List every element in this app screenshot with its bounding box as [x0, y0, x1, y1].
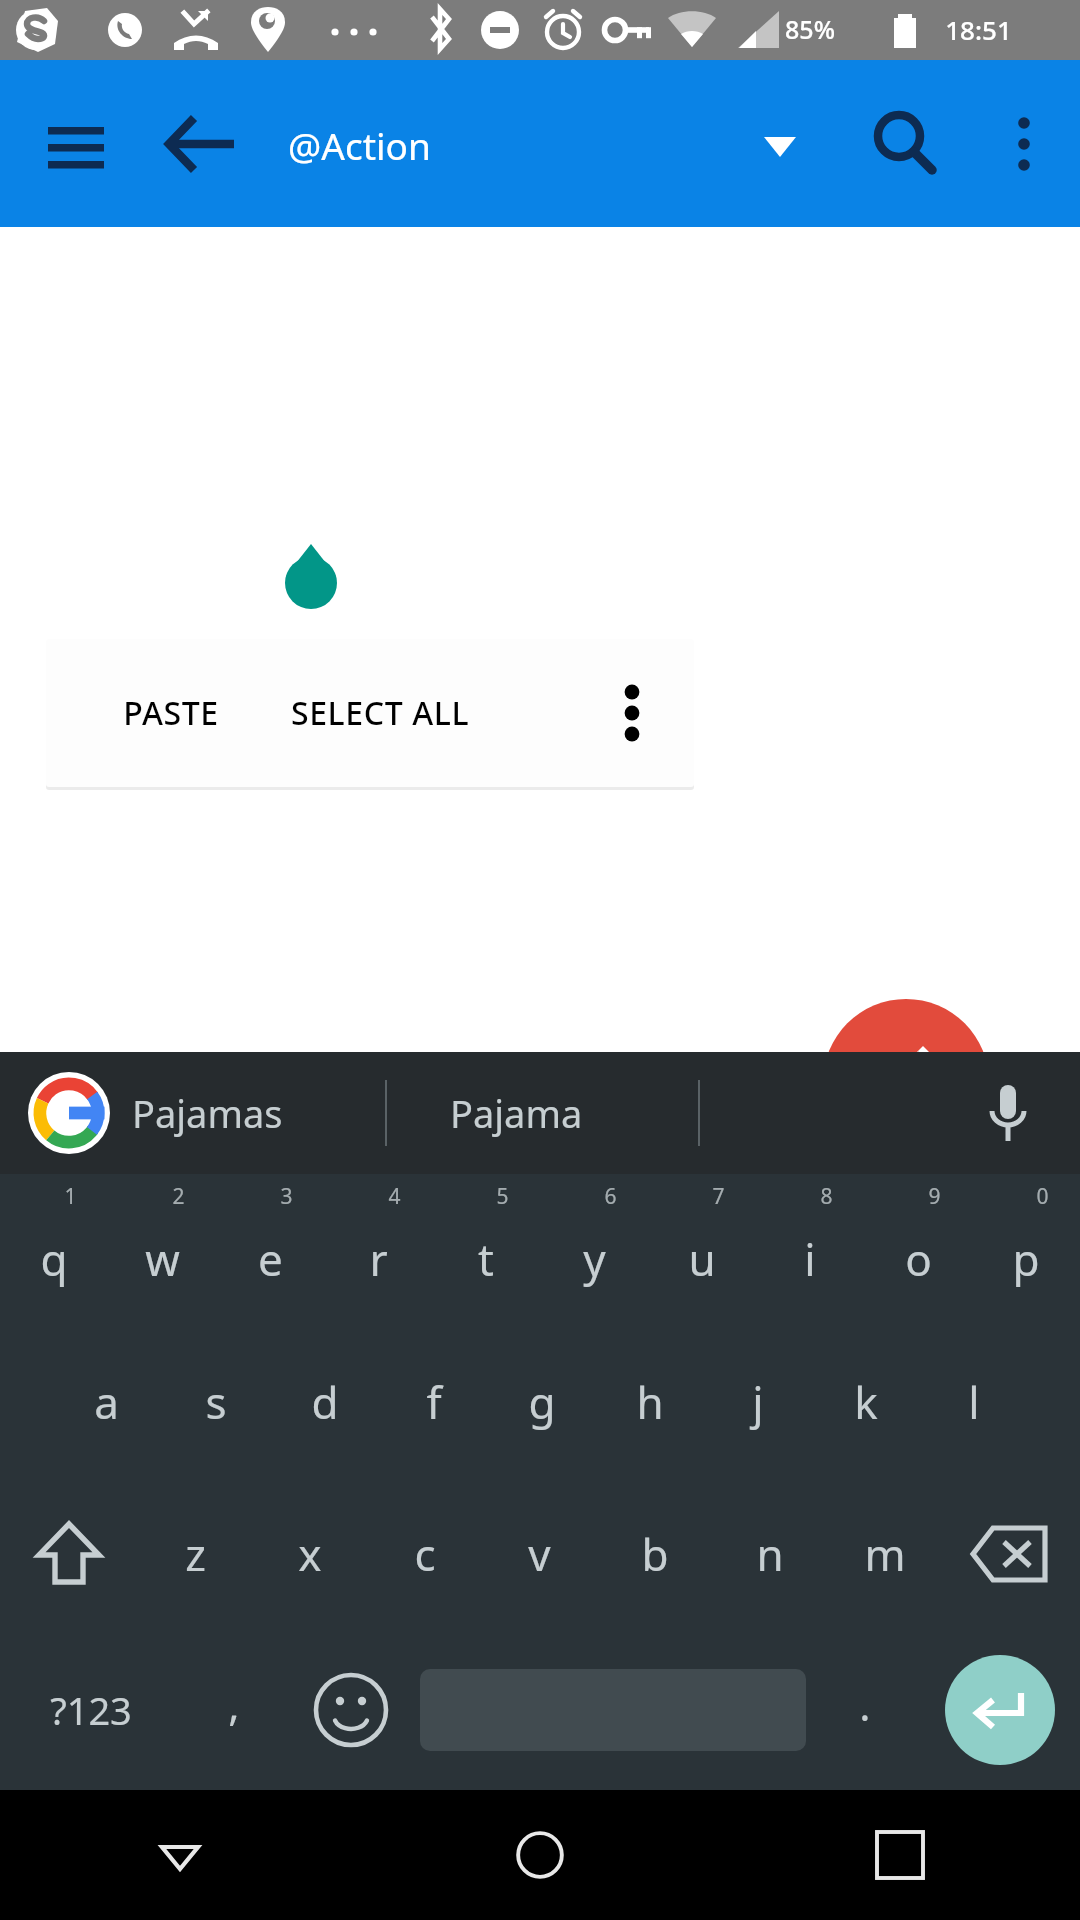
button[interactable]: 5 — [432, 1174, 540, 1326]
staticText: s — [205, 1372, 227, 1432]
button[interactable]: , — [182, 1630, 286, 1790]
staticText: k — [854, 1372, 878, 1432]
staticText: 3 — [280, 1182, 293, 1211]
staticText: Pajama — [450, 1087, 583, 1139]
button[interactable]: f — [379, 1326, 488, 1478]
staticText: u — [688, 1229, 716, 1289]
button[interactable]: l — [920, 1326, 1028, 1478]
staticText: r — [369, 1229, 388, 1289]
staticText: x — [298, 1524, 322, 1584]
button[interactable]: SELECT ALL — [291, 639, 551, 787]
button[interactable]: Enter — [920, 1630, 1080, 1790]
button[interactable]: PASTE — [96, 639, 246, 787]
staticText: 1 — [64, 1182, 77, 1211]
staticText: 4 — [388, 1182, 401, 1211]
button[interactable]: 6 — [540, 1174, 648, 1326]
staticText: m — [864, 1524, 906, 1584]
button[interactable]: Recent apps — [720, 1790, 1080, 1920]
button[interactable]: n — [712, 1478, 827, 1630]
staticText: , — [228, 1676, 240, 1733]
button[interactable]: Shift — [0, 1478, 138, 1630]
button[interactable]: j — [704, 1326, 812, 1478]
button[interactable]: ?123 — [0, 1630, 182, 1790]
staticText: o — [905, 1229, 932, 1289]
staticText: e — [258, 1229, 283, 1289]
staticText: c — [414, 1524, 436, 1584]
staticText: v — [528, 1524, 551, 1584]
button[interactable]: Open navigation drawer — [28, 96, 124, 192]
button[interactable]: 8 — [756, 1174, 864, 1326]
staticText: w — [145, 1229, 180, 1289]
button[interactable]: x — [252, 1478, 367, 1630]
staticText: q — [40, 1229, 68, 1289]
button[interactable]: 7 — [648, 1174, 756, 1326]
staticText: f — [426, 1372, 442, 1432]
staticText: Pajamas — [132, 1087, 283, 1139]
button[interactable]: c — [367, 1478, 482, 1630]
button[interactable]: . — [810, 1630, 920, 1790]
button[interactable]: g — [488, 1326, 596, 1478]
button[interactable] — [416, 1630, 810, 1790]
button[interactable]: Compose — [823, 999, 989, 1165]
staticText: l — [968, 1372, 980, 1432]
button[interactable]: Hide keyboard — [0, 1790, 360, 1920]
button[interactable]: h — [596, 1326, 704, 1478]
staticText: y — [583, 1229, 606, 1289]
button[interactable]: Home — [360, 1790, 720, 1920]
button[interactable]: m — [827, 1478, 942, 1630]
button[interactable]: b — [597, 1478, 712, 1630]
button[interactable]: Voice input — [958, 1063, 1058, 1163]
staticText: z — [185, 1524, 206, 1584]
staticText: 6 — [604, 1182, 617, 1211]
button[interactable]: s — [161, 1326, 270, 1478]
button[interactable]: 3 — [216, 1174, 324, 1326]
staticText: 9 — [928, 1182, 941, 1211]
staticText: a — [94, 1372, 119, 1432]
button[interactable]: More options — [985, 105, 1063, 183]
staticText: d — [311, 1372, 339, 1432]
staticText: @Action — [288, 120, 431, 170]
button[interactable]: 2 — [108, 1174, 216, 1326]
button[interactable]: Navigate up — [150, 92, 254, 196]
staticText: b — [641, 1524, 669, 1584]
staticText: h — [636, 1372, 664, 1432]
button[interactable]: a — [52, 1326, 161, 1478]
staticText: 0 — [1036, 1182, 1049, 1211]
staticText: 8 — [820, 1182, 833, 1211]
button[interactable]: d — [270, 1326, 379, 1478]
staticText: PASTE — [123, 691, 219, 735]
staticText: j — [752, 1372, 764, 1432]
button[interactable]: z — [138, 1478, 252, 1630]
button[interactable]: Search — [858, 96, 954, 192]
staticText: 5 — [496, 1182, 509, 1211]
button[interactable]: v — [482, 1478, 597, 1630]
button[interactable]: k — [812, 1326, 920, 1478]
button[interactable]: Pajamas — [132, 1052, 382, 1174]
button[interactable]: Emoji — [286, 1630, 416, 1790]
staticText: . — [859, 1676, 871, 1733]
button[interactable]: Show dropdown — [745, 109, 815, 179]
staticText: 18:51 — [945, 12, 1012, 47]
staticText: SELECT ALL — [291, 691, 470, 735]
staticText: 2 — [172, 1182, 185, 1211]
staticText: p — [1012, 1229, 1040, 1289]
button[interactable]: More text options — [584, 665, 680, 761]
button[interactable]: 4 — [324, 1174, 432, 1326]
staticText: n — [756, 1524, 784, 1584]
staticText: i — [804, 1229, 816, 1289]
button[interactable]: 0 — [972, 1174, 1080, 1326]
staticText: g — [528, 1372, 556, 1432]
button[interactable]: 1 — [0, 1174, 108, 1326]
staticText: ?123 — [50, 1684, 132, 1736]
button[interactable]: Pajama — [450, 1052, 700, 1174]
button[interactable]: Backspace — [942, 1478, 1080, 1630]
button[interactable]: 9 — [864, 1174, 972, 1326]
staticText: 7 — [712, 1182, 725, 1211]
staticText: 85% — [785, 12, 835, 46]
staticText: t — [478, 1229, 494, 1289]
